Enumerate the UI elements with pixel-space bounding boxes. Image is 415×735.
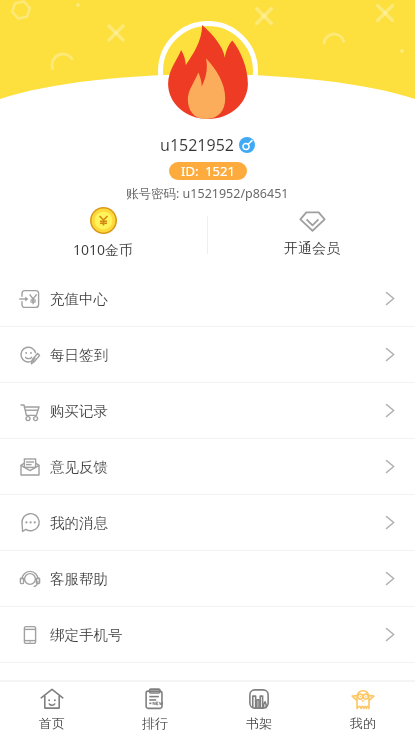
- staticText: 账号密码: u1521952/p86451: [126, 185, 289, 202]
- staticText: ID: 1521: [181, 162, 235, 180]
- button[interactable]: 开通会员: [208, 207, 415, 262]
- staticText: 客服帮助: [50, 570, 108, 588]
- staticText: 充值中心: [50, 290, 108, 308]
- staticText: u1521952: [160, 134, 234, 156]
- button[interactable]: 充值中心: [0, 271, 415, 327]
- staticText: 首页: [39, 715, 65, 731]
- button[interactable]: 1010金币: [0, 207, 207, 262]
- button[interactable]: 意见反馈: [0, 439, 415, 495]
- button[interactable]: 绑定手机号: [0, 607, 415, 663]
- button[interactable]: 书架: [207, 682, 311, 735]
- staticText: 意见反馈: [50, 458, 108, 476]
- button[interactable]: 我的消息: [0, 495, 415, 551]
- button[interactable]: 首页: [0, 682, 103, 735]
- button[interactable]: 排行: [103, 682, 207, 735]
- staticText: 书架: [246, 715, 272, 731]
- staticText: 开通会员: [284, 240, 340, 258]
- button[interactable]: 每日签到: [0, 327, 415, 383]
- button[interactable]: 购买记录: [0, 383, 415, 439]
- staticText: 绑定手机号: [50, 626, 123, 644]
- staticText: 我的: [350, 715, 376, 731]
- staticText: 我的消息: [50, 514, 108, 532]
- button[interactable]: 我的: [311, 682, 415, 735]
- button[interactable]: ID: 1521: [169, 162, 247, 180]
- staticText: 排行: [142, 715, 168, 731]
- staticText: 购买记录: [50, 402, 108, 420]
- staticText: 1010金币: [73, 240, 134, 259]
- button[interactable]: 客服帮助: [0, 551, 415, 607]
- staticText: 每日签到: [50, 346, 108, 364]
